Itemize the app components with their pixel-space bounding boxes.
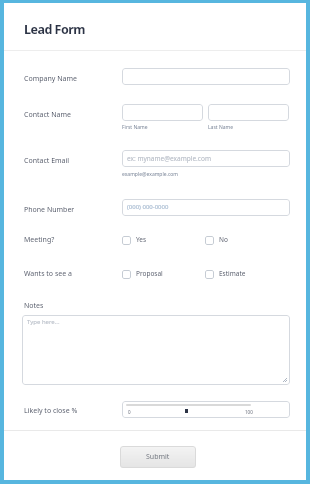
button[interactable] [122,270,131,279]
button[interactable] [205,270,214,279]
staticText: Notes [24,301,44,311]
button[interactable] [122,68,290,85]
staticText: (000) 000-0000 [127,203,169,211]
staticText: ex: myname@example.com [127,154,211,163]
staticText: Wants to see a [24,269,72,279]
button[interactable] [122,401,290,418]
button[interactable] [22,315,290,385]
staticText: Estimate [219,269,246,278]
button[interactable] [122,199,290,216]
button[interactable] [122,150,290,167]
staticText: Proposal [136,269,163,278]
staticText: Company Name [24,74,77,84]
staticText: Likely to close % [24,406,78,416]
staticText: No [219,235,228,244]
button[interactable] [122,104,203,121]
staticText: 100 [245,409,253,415]
staticText: example@example.com [122,171,178,178]
staticText: Meeting? [24,235,55,245]
button[interactable] [208,104,289,121]
staticText: Submit [146,452,170,462]
staticText: Lead Form [24,21,86,38]
staticText: 0 [128,409,131,415]
staticText: Contact Email [24,156,70,166]
staticText: Phone Number [24,205,75,215]
button[interactable] [205,236,214,245]
staticText: First Name [122,124,148,131]
staticText: Last Name [208,124,234,131]
staticText: Yes [136,235,147,244]
staticText: Contact Name [24,110,71,120]
button[interactable]: Submit [120,446,196,468]
staticText: Type here... [27,318,60,326]
button[interactable] [122,236,131,245]
